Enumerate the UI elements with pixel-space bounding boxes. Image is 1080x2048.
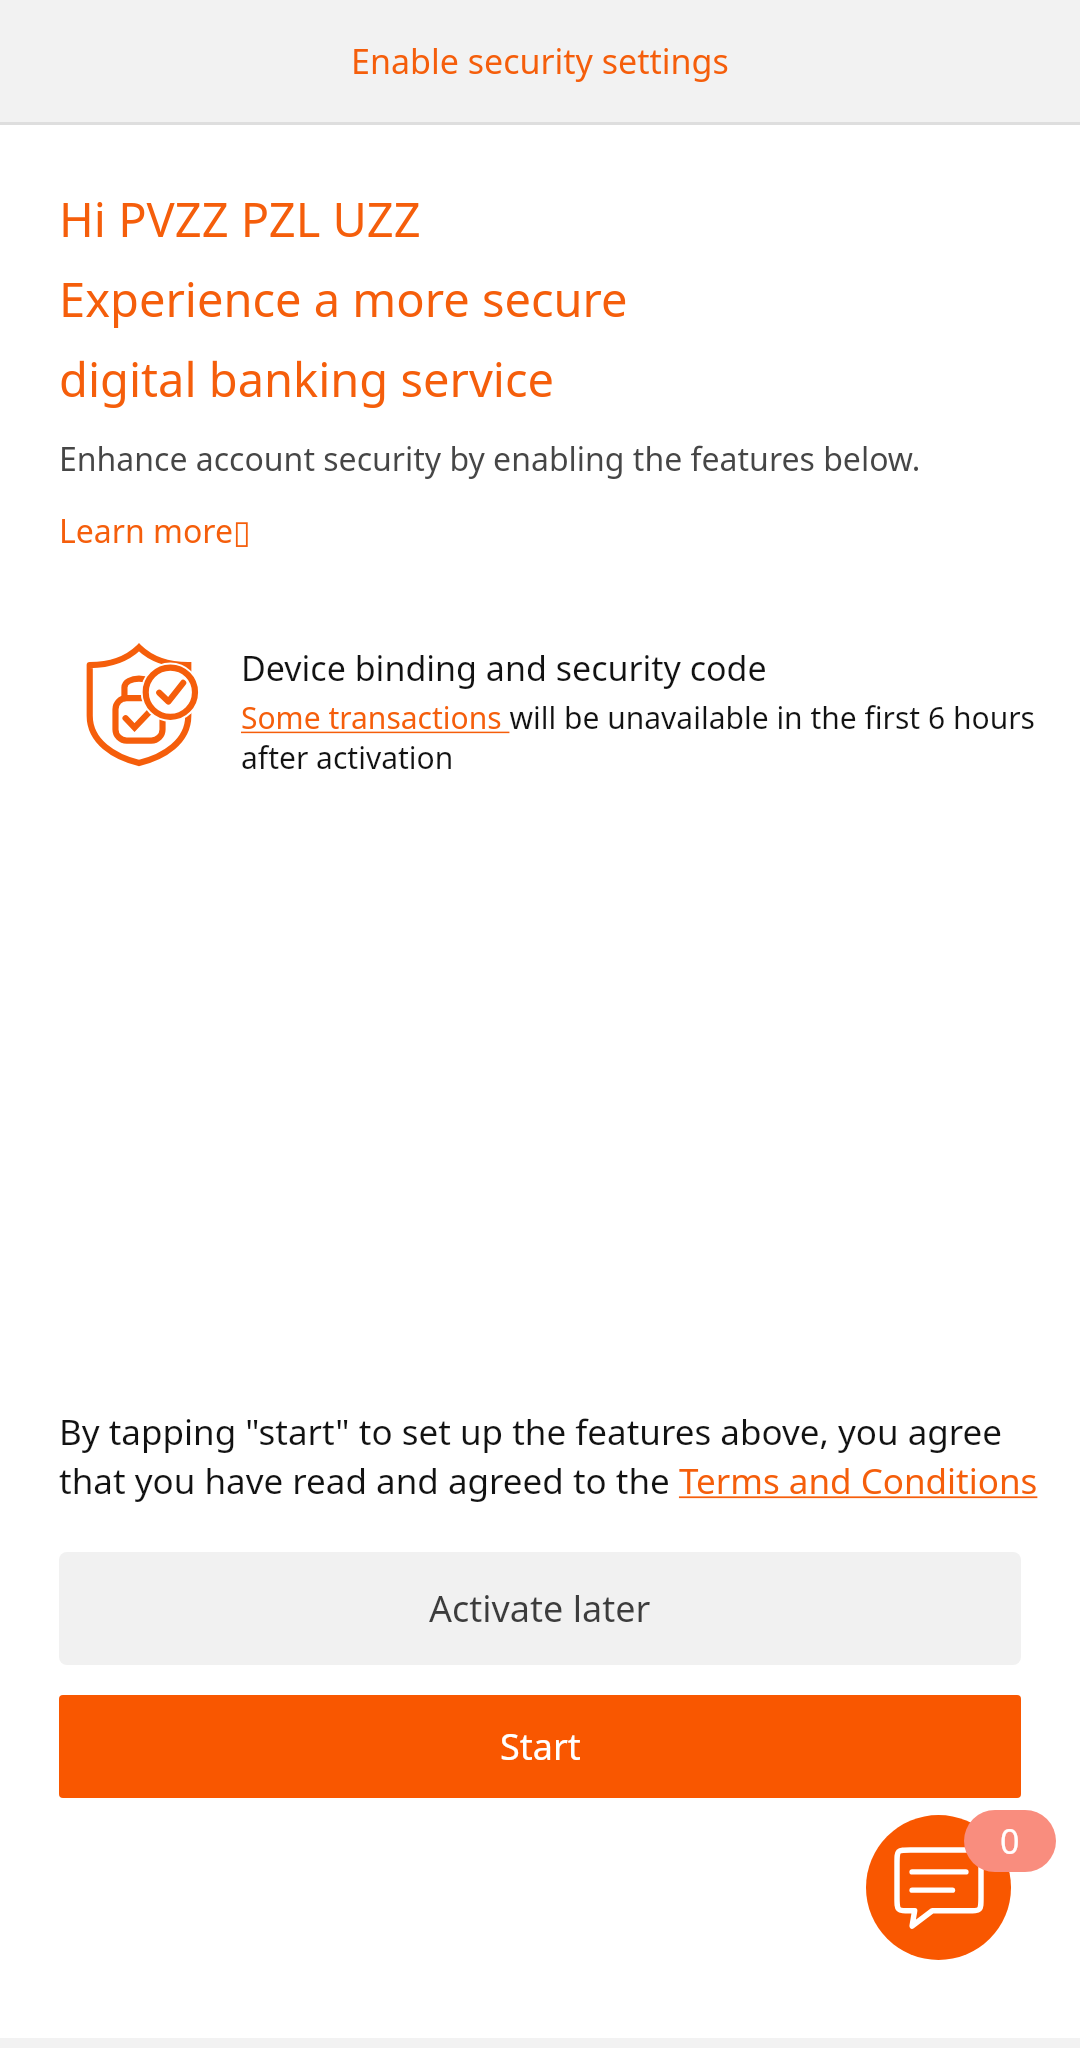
button[interactable]: Activate later [59,1552,1021,1665]
button[interactable]: Start [59,1695,1021,1798]
staticText: Start [500,1722,581,1771]
staticText: By tapping "start" to set up the feature… [59,1408,1044,1504]
staticText: Device binding and security code [241,645,767,691]
staticText: Activate later [429,1584,651,1633]
staticText: Some transactions will be unavailable in… [241,697,1040,778]
staticText: Enhance account security by enabling the… [59,437,921,481]
button[interactable]: Chat [866,1815,1011,1960]
button[interactable]: Learn more▯ [59,509,251,553]
staticText: Hi PVZZ PZL UZZ Experience a more secure… [59,187,628,411]
staticText: Learn more▯ [59,509,251,553]
staticText: Enable security settings [351,38,729,84]
staticText: 0 [1000,1818,1020,1864]
